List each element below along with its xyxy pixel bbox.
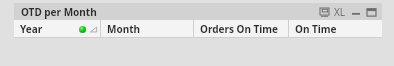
button[interactable]: Year [14, 20, 100, 38]
button[interactable]: Month [101, 20, 193, 38]
staticText: Orders On Time [200, 22, 279, 36]
button[interactable]: Export to Excel [334, 5, 346, 19]
button[interactable]: Maximize [365, 6, 378, 19]
button[interactable]: Minimize [350, 6, 362, 18]
button[interactable]: Orders On Time [194, 20, 288, 38]
staticText: XL [334, 5, 346, 19]
button[interactable]: Print [318, 6, 331, 19]
staticText: Year [20, 22, 43, 36]
button[interactable]: On Time [289, 20, 382, 38]
staticText: Month [107, 22, 141, 36]
staticText: OTD per Month [21, 5, 97, 19]
staticText: On Time [295, 22, 337, 36]
